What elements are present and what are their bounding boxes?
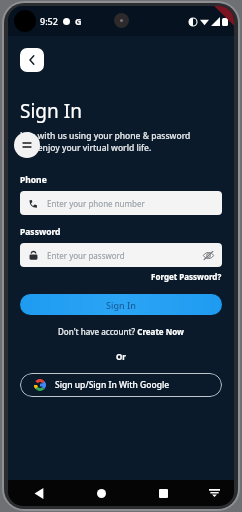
- button[interactable]: Home: [70, 480, 132, 506]
- button[interactable]: Show password: [199, 246, 217, 264]
- button[interactable]: Back: [20, 48, 44, 72]
- staticText: G: [75, 15, 82, 27]
- button[interactable]: Recents: [132, 480, 194, 506]
- button[interactable]: Keyboard: [194, 480, 234, 506]
- button[interactable]: Sign up/Sign In With Google: [20, 373, 222, 397]
- button[interactable]: Enter your phone number: [20, 191, 222, 215]
- button[interactable]: Back: [8, 480, 70, 506]
- button[interactable]: Sign In: [20, 294, 222, 315]
- staticText: Enter your password: [47, 250, 199, 261]
- staticText: Join with us using your phone & password…: [20, 130, 191, 154]
- staticText: Sign up/Sign In With Google: [55, 379, 170, 391]
- button[interactable]: Don't have account? Create Now: [58, 326, 184, 337]
- staticText: Phone: [20, 174, 47, 186]
- button[interactable]: Forget Password?: [151, 271, 222, 282]
- staticText: Enter your phone number: [47, 198, 222, 209]
- button[interactable]: Menu: [14, 132, 40, 158]
- staticText: 9:52: [40, 15, 58, 27]
- button[interactable]: Enter your password: [20, 243, 222, 267]
- staticText: Sign In: [20, 98, 82, 124]
- staticText: Password: [20, 226, 61, 238]
- staticText: Or: [116, 351, 126, 362]
- staticText: Sign In: [106, 299, 136, 311]
